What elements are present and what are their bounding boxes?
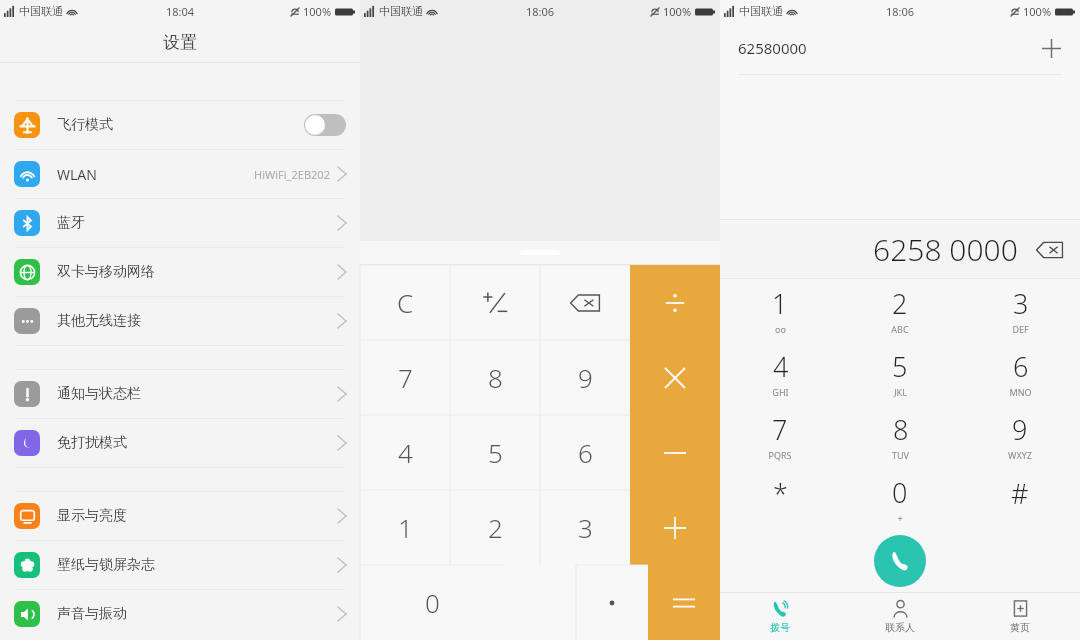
staticText: HiWiFi_2EB202	[254, 167, 330, 182]
staticText: 声音与振动	[57, 605, 127, 623]
button[interactable]: Airplane mode toggle	[304, 114, 346, 136]
staticText: 6	[578, 435, 593, 470]
button[interactable]: 5	[840, 341, 960, 404]
staticText: ABC	[891, 323, 909, 335]
button[interactable]	[630, 415, 720, 490]
staticText: 62580000	[738, 38, 807, 58]
staticText: 蓝牙	[57, 214, 85, 232]
staticText: +	[897, 512, 903, 524]
staticText: WLAN	[57, 165, 97, 184]
staticText: 100%	[663, 4, 692, 19]
button[interactable]: Add contact	[1034, 31, 1068, 65]
button[interactable]: 壁纸与锁屏杂志	[0, 541, 360, 589]
button[interactable]: 4	[720, 341, 840, 404]
button[interactable]: Backspace	[1032, 237, 1066, 263]
button[interactable]: 蓝牙	[0, 199, 360, 247]
button[interactable]: 6	[540, 415, 630, 490]
staticText: 飞行模式	[57, 116, 113, 134]
button[interactable]: 6	[960, 341, 1080, 404]
staticText: 4	[773, 348, 789, 385]
staticText: 100%	[303, 4, 332, 19]
staticText: 其他无线连接	[57, 312, 141, 330]
staticText: 黄页	[1010, 621, 1030, 634]
staticText: 7	[398, 360, 413, 395]
staticText: 壁纸与锁屏杂志	[57, 556, 155, 574]
staticText: *	[773, 475, 788, 512]
staticText: PQRS	[768, 449, 792, 461]
button[interactable]: 通知与状态栏	[0, 370, 360, 418]
button[interactable]: *	[720, 467, 840, 530]
button[interactable]	[630, 490, 720, 565]
button[interactable]: 1	[360, 490, 450, 565]
staticText: 18:06	[886, 4, 915, 19]
button[interactable]	[576, 565, 648, 640]
staticText: 18:06	[526, 4, 555, 19]
staticText: WXYZ	[1008, 449, 1032, 461]
button[interactable]: 0	[840, 467, 960, 530]
button[interactable]: 拨号	[720, 593, 840, 640]
staticText: 联系人	[885, 621, 915, 634]
staticText: 2	[488, 510, 503, 545]
staticText: DEF	[1012, 323, 1029, 335]
button[interactable]: 双卡与移动网络	[0, 248, 360, 296]
staticText: 6258 0000	[873, 229, 1018, 270]
button[interactable]: 8	[450, 340, 540, 415]
button[interactable]: #	[960, 467, 1080, 530]
staticText: #	[1011, 475, 1029, 512]
staticText: 8	[893, 411, 909, 448]
staticText: 通知与状态栏	[57, 385, 141, 403]
staticText: 8	[488, 360, 503, 395]
staticText: 中国联通	[19, 4, 63, 18]
staticText: 3	[1013, 285, 1029, 322]
staticText: 7	[772, 411, 788, 448]
button[interactable]: Delete	[540, 265, 630, 340]
staticText: 设置	[163, 32, 197, 53]
button[interactable]: 2	[450, 490, 540, 565]
staticText: 中国联通	[739, 4, 783, 18]
button[interactable]: 4	[360, 415, 450, 490]
button[interactable]: 其他无线连接	[0, 297, 360, 345]
button[interactable]: 7	[360, 340, 450, 415]
button[interactable]: 0	[360, 565, 504, 640]
staticText: MNO	[1009, 386, 1032, 398]
button[interactable]: 黄页	[960, 593, 1080, 640]
button[interactable]	[648, 565, 720, 640]
button[interactable]: 9	[960, 404, 1080, 467]
button[interactable]: 3	[960, 279, 1080, 341]
button[interactable]: 7	[720, 404, 840, 467]
button[interactable]	[450, 265, 540, 340]
staticText: oo	[775, 323, 786, 335]
staticText: 4	[398, 435, 413, 470]
button[interactable]	[630, 340, 720, 415]
button[interactable]: Call	[874, 535, 926, 587]
staticText: 2	[892, 285, 908, 322]
button[interactable]: 8	[840, 404, 960, 467]
button[interactable]: 飞行模式	[0, 101, 360, 149]
button[interactable]: 5	[450, 415, 540, 490]
staticText: JKL	[894, 386, 907, 398]
staticText: 100%	[1023, 4, 1052, 19]
staticText: C	[397, 285, 414, 320]
staticText: 18:04	[166, 4, 195, 19]
staticText: 3	[578, 510, 593, 545]
staticText: 中国联通	[379, 4, 423, 18]
button[interactable]: C	[360, 265, 450, 340]
button[interactable]: 9	[540, 340, 630, 415]
staticText: 双卡与移动网络	[57, 263, 155, 281]
button[interactable]	[630, 265, 720, 340]
staticText: 9	[578, 360, 593, 395]
button[interactable]: 1	[720, 279, 840, 341]
button[interactable]: 2	[840, 279, 960, 341]
staticText: 5	[488, 435, 503, 470]
staticText: 1	[772, 285, 788, 322]
staticText: 5	[892, 348, 908, 385]
button[interactable]: 声音与振动	[0, 590, 360, 638]
staticText: 6	[1013, 348, 1029, 385]
button[interactable]: WLAN	[0, 150, 360, 198]
button[interactable]: 3	[540, 490, 630, 565]
button[interactable]: 联系人	[840, 593, 960, 640]
button[interactable]: 免打扰模式	[0, 419, 360, 467]
staticText: 0	[425, 585, 440, 620]
button[interactable]: 显示与亮度	[0, 492, 360, 540]
staticText: 0	[892, 474, 908, 511]
